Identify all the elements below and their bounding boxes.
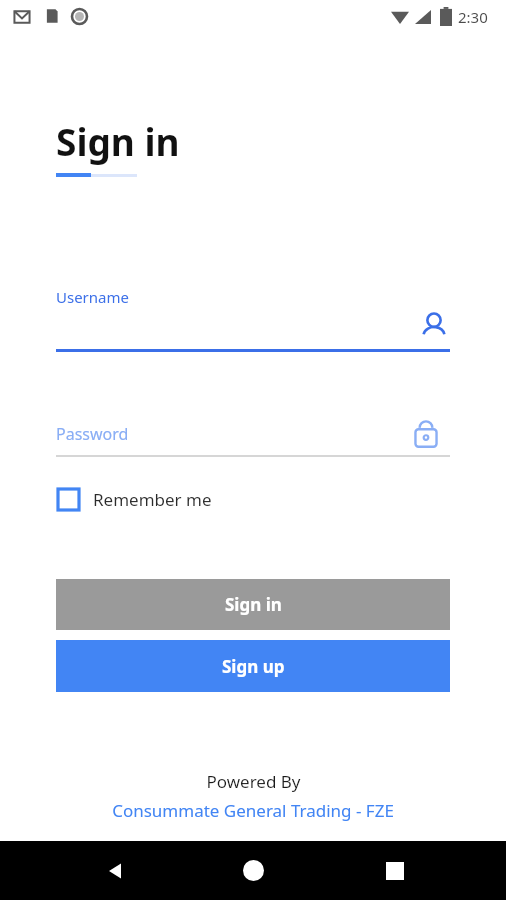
staticText: Remember me (93, 488, 212, 511)
staticText: Sign in (56, 116, 180, 166)
button[interactable]: Sign in (56, 579, 450, 630)
button[interactable]: Recents (365, 841, 425, 900)
button[interactable]: Remember me (56, 487, 220, 512)
staticText: Sign in (225, 593, 282, 616)
staticText: 2:30 (458, 7, 488, 27)
other: Password (409, 414, 443, 452)
button[interactable]: Consummate General Trading - FZE (112, 799, 394, 822)
button[interactable]: Home (223, 841, 283, 900)
staticText: Consummate General Trading - FZE (112, 799, 394, 822)
button[interactable]: Back (86, 841, 146, 900)
other: Username (417, 310, 451, 344)
staticText: Sign up (222, 655, 285, 678)
button[interactable]: Sign up (56, 640, 450, 692)
button[interactable] (56, 412, 450, 456)
staticText: Powered By (206, 770, 301, 793)
staticText: Username (56, 287, 129, 307)
staticText: Password (56, 423, 129, 445)
button[interactable] (56, 300, 450, 352)
